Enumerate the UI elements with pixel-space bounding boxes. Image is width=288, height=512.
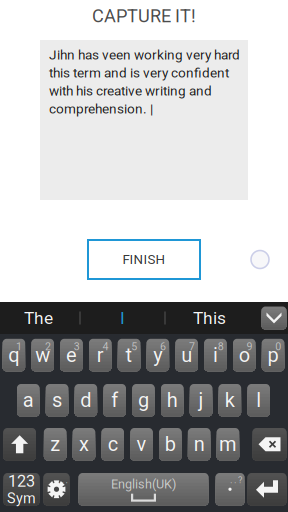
button[interactable]: Keyboard settings — [43, 473, 69, 505]
staticText: k — [225, 388, 235, 412]
button[interactable] — [159, 428, 182, 460]
staticText — [233, 429, 236, 442]
staticText: 8 — [218, 340, 224, 353]
staticText: Jihn has veen working very hard — [49, 47, 240, 63]
button[interactable]: 0 — [262, 339, 284, 371]
button[interactable] — [44, 428, 66, 460]
button[interactable] — [132, 384, 155, 416]
button[interactable]: 1 — [3, 339, 25, 371]
staticText: The — [24, 308, 53, 328]
button[interactable] — [161, 384, 183, 416]
staticText: t — [125, 343, 132, 367]
staticText: comprehension. | — [49, 101, 153, 117]
staticText: 3 — [74, 340, 80, 353]
staticText: r — [97, 343, 104, 367]
button[interactable]: This — [165, 302, 253, 334]
staticText — [204, 429, 207, 442]
button[interactable]: More suggestions — [261, 306, 286, 329]
staticText: I — [120, 308, 125, 328]
button[interactable] — [190, 384, 212, 416]
staticText: with his creative writing and — [49, 83, 212, 99]
staticText: z — [50, 432, 60, 456]
staticText — [177, 385, 180, 398]
staticText: u — [181, 343, 192, 367]
staticText — [206, 385, 209, 398]
staticText — [62, 385, 65, 398]
button[interactable] — [188, 428, 210, 460]
staticText — [60, 429, 63, 442]
staticText: This — [193, 308, 226, 328]
button[interactable]: 8 — [204, 339, 227, 371]
staticText: j — [199, 388, 204, 412]
button[interactable]: Numbers and symbols — [3, 473, 39, 505]
button[interactable] — [75, 384, 97, 416]
button[interactable]: I — [80, 302, 164, 334]
button[interactable] — [217, 428, 239, 460]
staticText: English(UK) — [111, 477, 176, 492]
staticText: 9 — [246, 340, 252, 353]
staticText: m — [219, 432, 237, 456]
staticText: y — [153, 343, 162, 367]
button[interactable]: 7 — [175, 339, 198, 371]
staticText: 4 — [102, 340, 108, 353]
staticText — [33, 385, 36, 398]
staticText: FINISH — [122, 252, 165, 267]
staticText: 7 — [189, 340, 195, 353]
button[interactable]: 9 — [233, 339, 255, 371]
button[interactable]: Backspace — [252, 428, 286, 460]
staticText — [89, 429, 92, 442]
button[interactable]: 3 — [60, 339, 83, 371]
button[interactable]: Record — [251, 250, 269, 268]
staticText: o — [239, 343, 250, 367]
staticText: n — [194, 432, 205, 456]
staticText — [176, 429, 179, 442]
staticText — [235, 385, 238, 398]
button[interactable] — [46, 384, 68, 416]
button[interactable]: Enter — [247, 473, 286, 505]
staticText: a — [23, 388, 34, 412]
staticText: 2 — [45, 340, 51, 353]
button[interactable] — [219, 384, 241, 416]
staticText: . . ? — [230, 474, 242, 485]
staticText: i — [213, 343, 218, 367]
staticText — [118, 429, 121, 442]
staticText: f — [111, 388, 118, 412]
staticText: l — [256, 388, 261, 412]
staticText: q — [8, 343, 19, 367]
staticText: x — [79, 432, 89, 456]
staticText — [264, 385, 267, 398]
button[interactable] — [130, 428, 153, 460]
staticText: c — [108, 432, 118, 456]
staticText: CAPTURE IT! — [92, 5, 196, 27]
button[interactable] — [103, 384, 126, 416]
staticText: v — [137, 432, 147, 456]
staticText: Sym — [7, 490, 36, 507]
button[interactable] — [17, 384, 39, 416]
button[interactable]: The — [0, 302, 79, 334]
staticText — [149, 385, 152, 398]
staticText: s — [52, 388, 62, 412]
staticText: w — [35, 343, 50, 367]
staticText: e — [66, 343, 77, 367]
button[interactable]: Punctuation — [215, 473, 244, 505]
button[interactable]: 2 — [31, 339, 54, 371]
staticText: . . . — [57, 474, 67, 485]
staticText: this term and is very confident — [49, 65, 229, 81]
staticText: 5 — [131, 340, 137, 353]
button[interactable]: 6 — [147, 339, 169, 371]
button[interactable]: FINISH — [88, 240, 200, 279]
button[interactable]: Shift — [3, 428, 36, 460]
staticText: b — [165, 432, 176, 456]
staticText — [91, 385, 94, 398]
staticText: g — [138, 388, 149, 412]
button[interactable] — [247, 384, 270, 416]
staticText: 6 — [160, 340, 166, 353]
button[interactable]: 5 — [118, 339, 140, 371]
staticText: h — [167, 388, 178, 412]
staticText: 0 — [275, 340, 281, 353]
button[interactable]: Space — [78, 473, 208, 505]
button[interactable]: 4 — [89, 339, 111, 371]
button[interactable] — [101, 428, 124, 460]
staticText — [147, 429, 150, 442]
button[interactable] — [73, 428, 95, 460]
